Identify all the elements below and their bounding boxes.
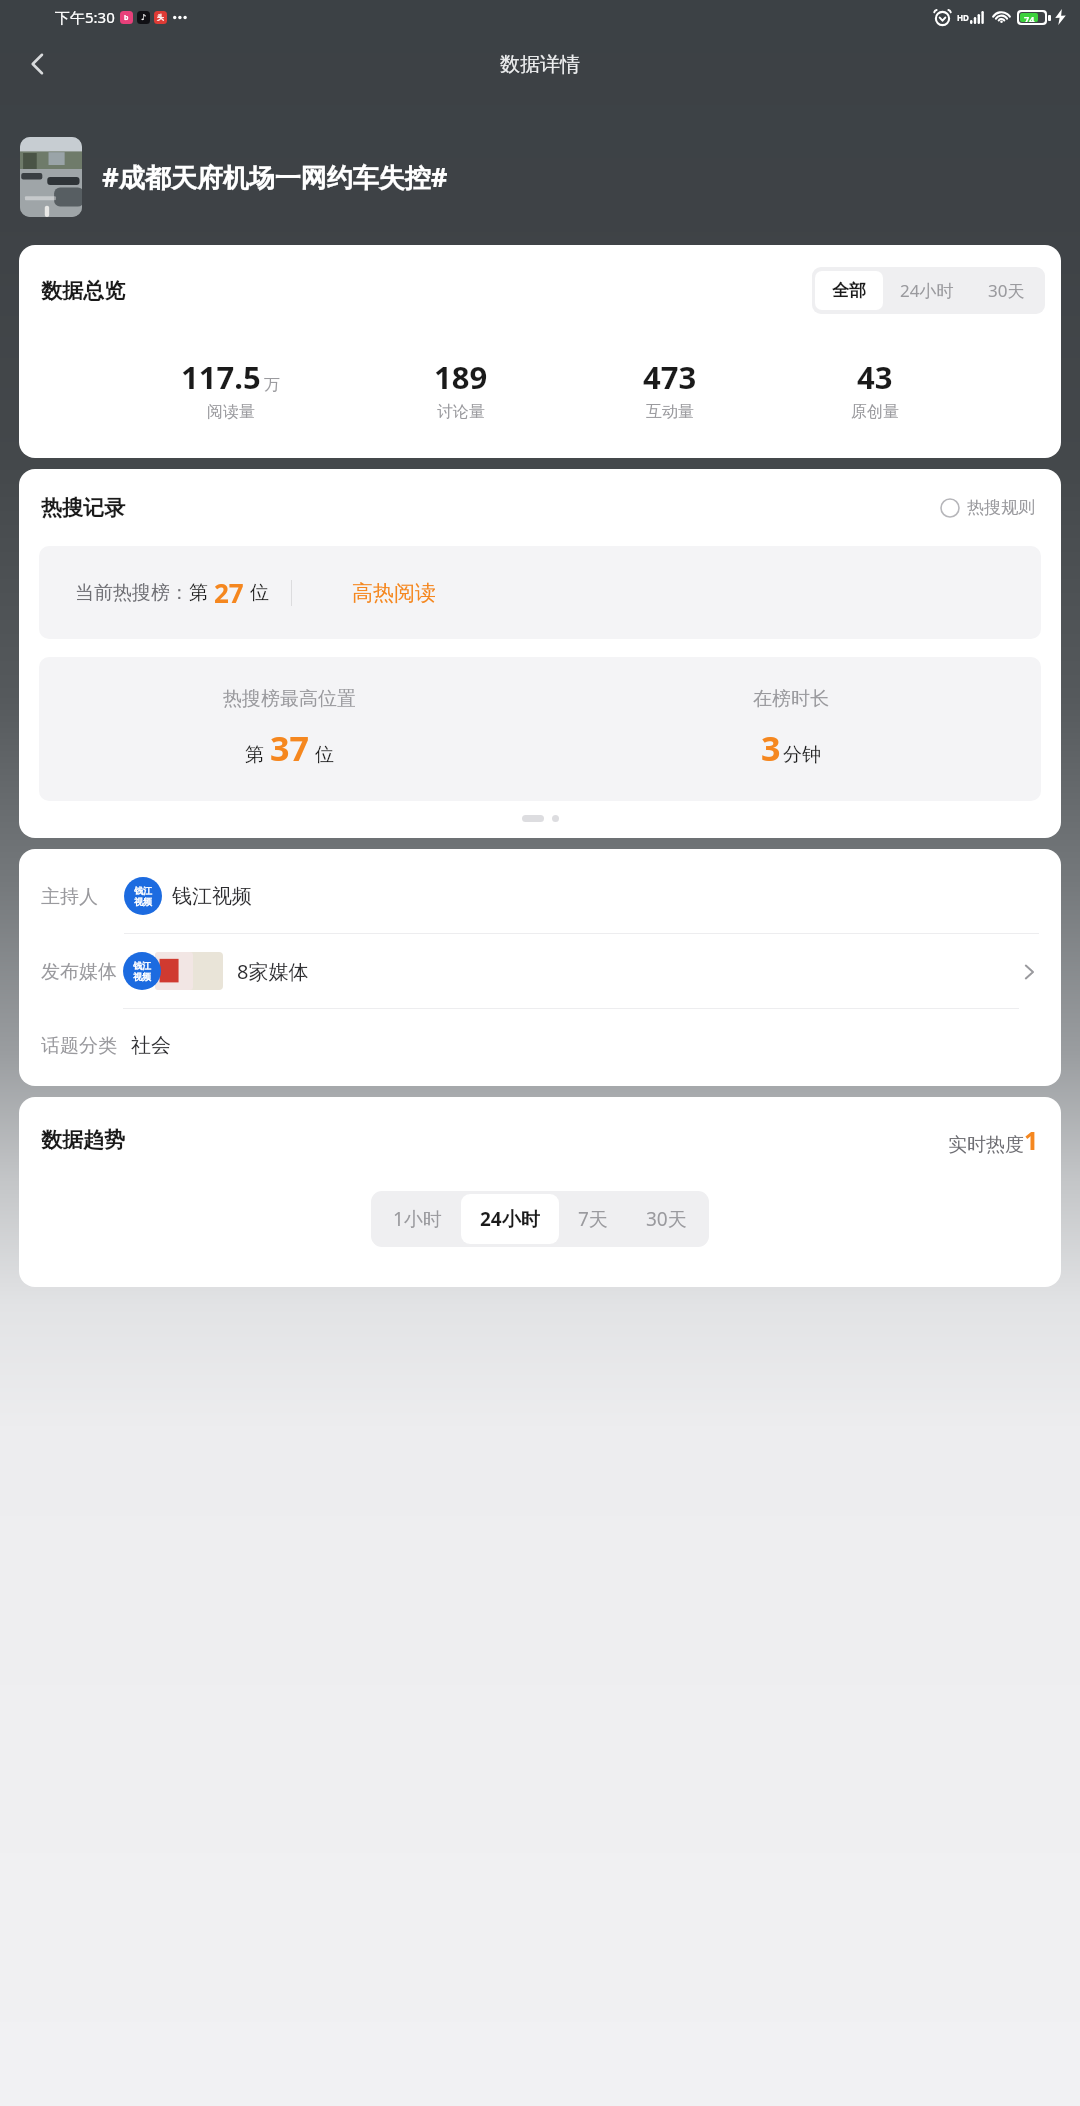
staticText: 当前热搜榜： [75,581,189,605]
staticText: 8家媒体 [237,958,309,985]
staticText: 7天 [578,1206,608,1232]
staticText: 位 [315,743,334,767]
staticText: 数据趋势 [41,1127,125,1153]
staticText: 钱江 [133,960,151,971]
staticText: 发布媒体 [41,960,117,984]
staticText: 数据总览 [41,278,125,304]
staticText: 实时热度 [948,1133,1024,1157]
button[interactable]: Back [14,40,62,88]
staticText: 24小时 [480,1206,540,1232]
staticText: 117.5 [181,356,261,398]
button[interactable]: 473 [643,356,697,422]
button[interactable]: 7天 [559,1194,627,1244]
staticText: 下午5:30 [55,7,115,27]
staticText: 37 [270,725,309,771]
staticText: 高热阅读 [352,580,436,606]
button[interactable]: 43 [851,356,899,422]
button[interactable]: 1小时 [374,1194,461,1244]
staticText: 3 [761,725,781,771]
staticText: 全部 [832,280,866,301]
button[interactable]: Topic thumbnail [20,137,82,217]
button[interactable]: 189 [434,356,488,422]
staticText: 数据详情 [500,52,580,77]
staticText: 话题分类 [41,1034,117,1058]
staticText: b [124,13,129,23]
button[interactable]: 24小时 [883,270,971,311]
button[interactable]: 全部 [815,271,883,310]
staticText: 热搜规则 [967,497,1035,518]
button[interactable]: 117.5 [181,356,280,422]
button[interactable]: 热搜榜最高位置 [39,687,540,771]
staticText: 第 [189,581,208,605]
staticText: 视频 [133,971,151,982]
staticText: 74 [1024,13,1035,22]
staticText: 分钟 [783,743,821,767]
staticText: 在榜时长 [753,687,829,711]
staticText: 27 [214,575,244,610]
staticText: 189 [434,356,488,398]
staticText: 30天 [988,279,1025,302]
staticText: 原创量 [851,402,899,422]
staticText: 头 [157,13,164,22]
staticText: 43 [857,356,893,398]
staticText: HD [957,12,969,23]
staticText: 社会 [131,1033,171,1058]
staticText: 视频 [134,896,152,907]
button[interactable]: 热搜规则 [936,493,1039,522]
button[interactable]: 当前热搜榜： [39,546,1041,639]
staticText: 钱江 [134,885,152,896]
button[interactable]: 主持人 [19,859,1061,934]
staticText: 473 [643,356,697,398]
staticText: 主持人 [41,885,98,909]
staticText: 热搜记录 [41,495,125,521]
staticText: 位 [250,581,269,605]
staticText: 24小时 [900,279,954,302]
staticText: 1小时 [393,1206,442,1232]
staticText: 第 [245,743,264,767]
staticText: 万 [264,375,280,395]
staticText: #成都天府机场一网约车失控# [102,159,448,195]
button[interactable]: 在榜时长 [540,687,1041,771]
button[interactable]: 24小时 [461,1194,559,1244]
staticText: 30天 [646,1206,687,1232]
staticText: 互动量 [646,402,694,422]
button[interactable]: 30天 [971,270,1042,311]
staticText: 阅读量 [207,402,255,422]
button[interactable]: 发布媒体 [19,934,1061,1009]
button[interactable]: 实时热度 [948,1123,1039,1157]
staticText: 讨论量 [437,402,485,422]
button[interactable]: 话题分类 [19,1009,1061,1086]
staticText: ♪ [141,13,147,22]
button[interactable]: 30天 [627,1194,706,1244]
staticText: 钱江视频 [172,884,252,909]
staticText: 热搜榜最高位置 [223,687,356,711]
staticText: 1 [1024,1123,1039,1157]
